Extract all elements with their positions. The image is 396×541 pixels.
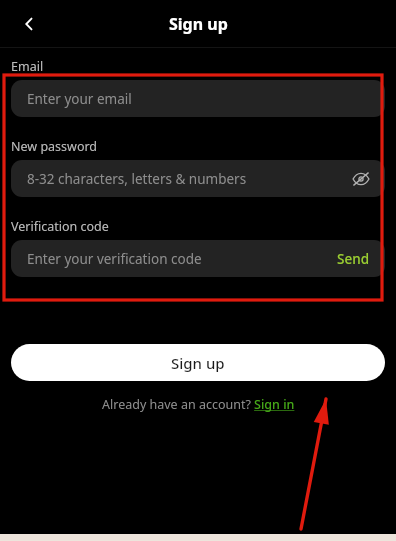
staticText: 8-32 characters, letters & numbers xyxy=(27,170,350,188)
staticText: Verification code xyxy=(11,218,109,235)
button[interactable]: Enter your email xyxy=(11,80,385,117)
staticText: Sign up xyxy=(169,13,228,35)
staticText: Enter your verification code xyxy=(27,250,335,268)
button[interactable]: Back xyxy=(12,7,46,41)
button[interactable]: Enter your verification code xyxy=(11,240,385,277)
staticText: Enter your email xyxy=(27,90,372,108)
staticText: New password xyxy=(11,138,98,155)
button[interactable]: Show password xyxy=(350,168,372,190)
button[interactable]: Send xyxy=(335,248,372,270)
button[interactable]: 8-32 characters, letters & numbers xyxy=(11,160,385,197)
staticText: Sign up xyxy=(171,353,225,373)
staticText: Send xyxy=(337,250,370,268)
staticText: Email xyxy=(11,58,44,75)
button[interactable]: Sign up xyxy=(11,344,385,381)
button[interactable]: Already have an account? Sign in xyxy=(98,394,299,415)
staticText: Already have an account? Sign in xyxy=(102,396,295,413)
